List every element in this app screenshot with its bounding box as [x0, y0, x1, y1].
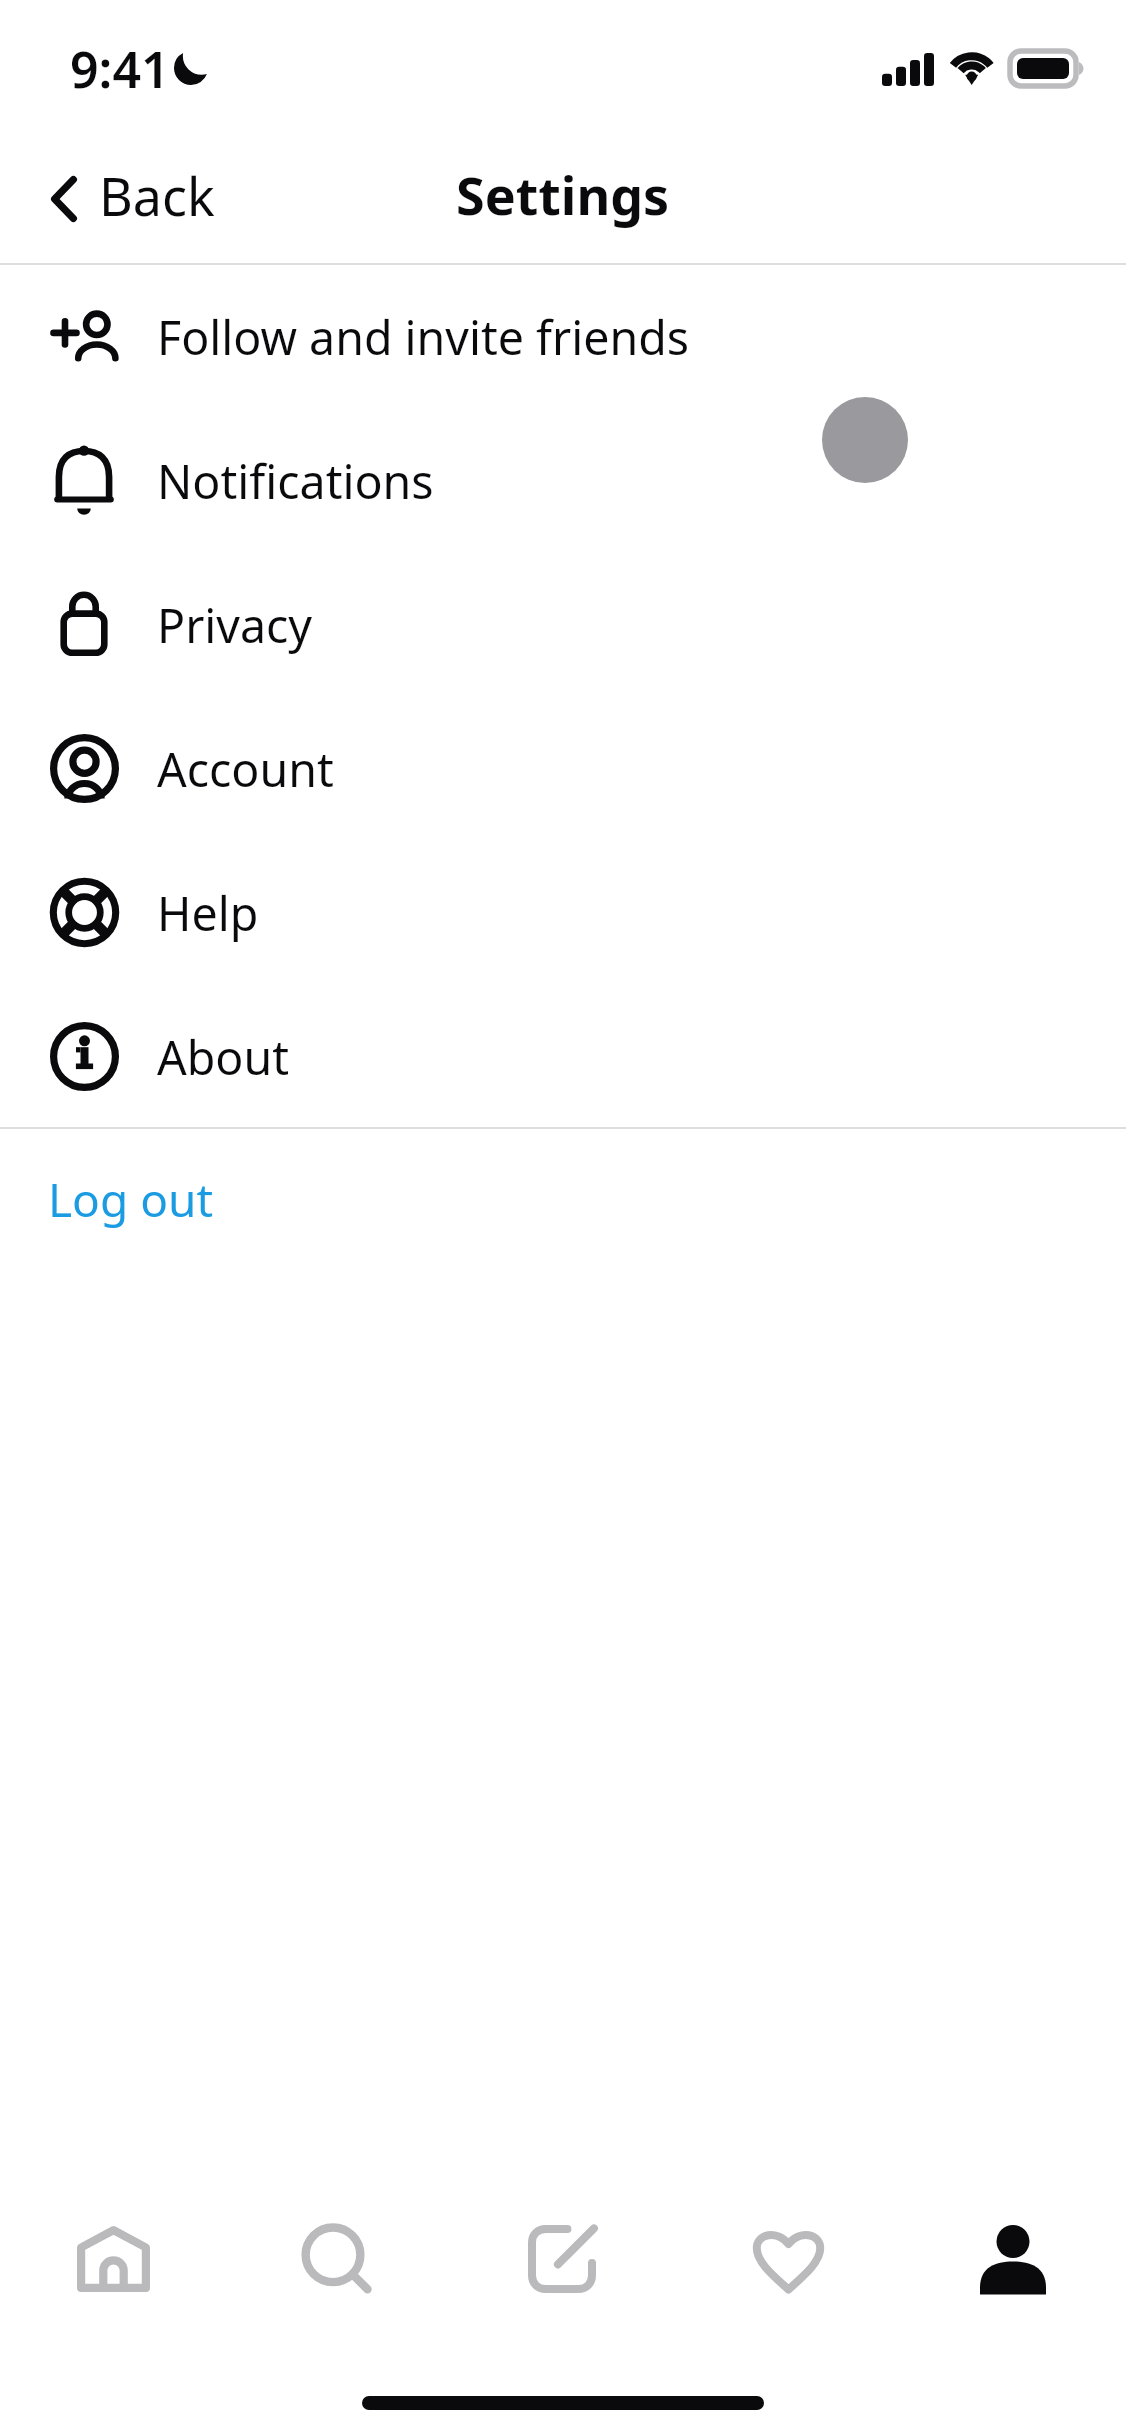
staticText: Back [99, 160, 215, 231]
button[interactable]: Home [57, 2203, 169, 2315]
staticText: Account [157, 737, 334, 800]
button[interactable]: Follow and invite friends [0, 264, 1126, 408]
button[interactable]: Help [0, 840, 1126, 984]
button[interactable]: Account [0, 696, 1126, 840]
button[interactable]: New post [506, 2203, 618, 2315]
button[interactable]: Notifications [0, 408, 1126, 552]
button[interactable]: About [0, 984, 1126, 1128]
button[interactable]: Search [277, 2203, 389, 2315]
staticText: Help [157, 881, 259, 944]
button[interactable]: Log out [0, 1129, 1126, 1271]
staticText: Log out [48, 1168, 214, 1231]
button[interactable]: Activity [732, 2203, 844, 2315]
staticText: Follow and invite friends [157, 305, 690, 368]
staticText: About [157, 1025, 289, 1088]
button[interactable]: Profile [957, 2203, 1069, 2315]
staticText: Privacy [157, 593, 313, 656]
button[interactable]: Privacy [0, 552, 1126, 696]
staticText: Settings [456, 159, 670, 230]
staticText: 9:41 [70, 35, 170, 103]
staticText: Notifications [157, 449, 434, 512]
button[interactable]: Back [25, 150, 241, 246]
